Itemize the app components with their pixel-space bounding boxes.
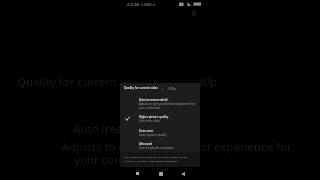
button[interactable]: Advanced — [120, 139, 200, 152]
staticText: Uses more data — [139, 119, 160, 123]
staticText: 4:35 AM 0.0KB/s ▾ — [127, 2, 156, 6]
staticText: Auto (recommended) — [139, 98, 168, 102]
button[interactable]: Higher picture quality — [120, 112, 200, 125]
staticText: Quality for current video — [124, 86, 158, 90]
button[interactable]: Auto (recommended) — [120, 95, 200, 108]
button[interactable]: Back — [177, 168, 188, 179]
staticText: These settings only apply to your curren… — [124, 155, 187, 158]
staticText: Higher picture quality — [139, 115, 169, 119]
staticText: Auto (recommended) — [73, 121, 188, 137]
staticText: of data on — [124, 159, 137, 162]
staticText: Advanced — [139, 142, 153, 146]
staticText: Quality for current video: Auto 1080p — [17, 74, 218, 90]
staticText: Adjusts to give you the best experience … — [62, 139, 292, 155]
button[interactable]: Recents — [132, 168, 143, 179]
staticText: Adjusts to give you the best experience … — [139, 102, 195, 109]
staticText: your connection — [74, 152, 162, 168]
button[interactable]: Home — [155, 168, 166, 179]
staticText: Data saver — [139, 129, 154, 133]
button[interactable]: Data saver — [120, 126, 200, 139]
staticText: 1080p — [168, 87, 177, 91]
button[interactable]: Mi Home · Video quality preferences — [137, 159, 178, 162]
staticText: Select a specific resolution — [139, 146, 174, 150]
staticText: Lower picture quality — [139, 133, 167, 137]
